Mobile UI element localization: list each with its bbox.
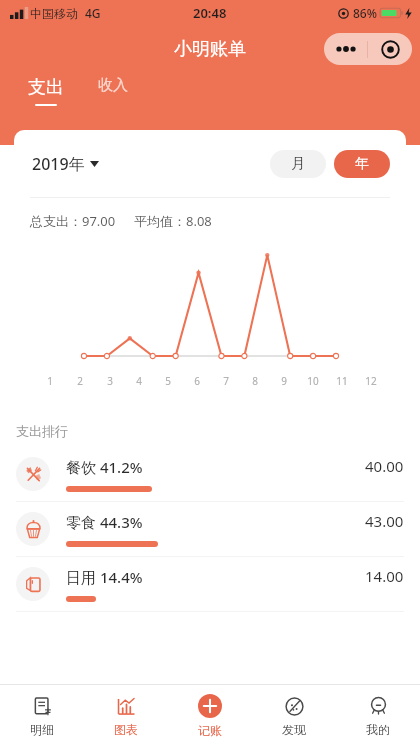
- staticText: 中国移动: [30, 6, 78, 21]
- staticText: 10: [307, 374, 319, 388]
- button[interactable]: 零食 44.3%: [0, 502, 420, 557]
- staticText: 年: [355, 155, 369, 173]
- staticText: 1: [47, 374, 53, 388]
- staticText: 餐饮 41.2%: [66, 457, 143, 477]
- staticText: 2: [77, 374, 83, 388]
- button[interactable]: 月: [270, 150, 326, 178]
- staticText: 明细: [30, 722, 54, 737]
- staticText: 日用 14.4%: [66, 567, 143, 587]
- staticText: 40.00: [365, 456, 404, 476]
- staticText: 7: [223, 374, 229, 388]
- staticText: 图表: [114, 722, 138, 737]
- staticText: 6: [194, 374, 200, 388]
- staticText: 5: [165, 374, 171, 388]
- button[interactable]: 支出: [24, 74, 68, 108]
- staticText: 平均值：8.08: [134, 212, 212, 230]
- button[interactable]: 我的: [336, 685, 420, 747]
- staticText: 4G: [85, 5, 101, 21]
- staticText: 收入: [98, 76, 128, 95]
- button[interactable]: 餐饮 41.2%: [0, 447, 420, 502]
- staticText: 小明账单: [174, 38, 246, 61]
- staticText: 9: [281, 374, 287, 388]
- staticText: 86%: [353, 5, 377, 21]
- staticText: 12: [365, 374, 377, 388]
- staticText: 支出: [28, 76, 64, 99]
- button[interactable]: 2019年: [30, 147, 101, 181]
- button[interactable]: 图表: [84, 685, 168, 747]
- staticText: 月: [291, 155, 305, 173]
- staticText: 零食 44.3%: [66, 512, 143, 532]
- staticText: 11: [336, 374, 348, 388]
- button[interactable]: 日用 14.4%: [0, 557, 420, 612]
- staticText: 14.00: [365, 566, 404, 586]
- staticText: 2019年: [32, 153, 85, 175]
- staticText: 总支出：97.00: [30, 212, 116, 230]
- button[interactable]: 记账: [168, 685, 252, 747]
- staticText: 8: [252, 374, 258, 388]
- staticText: 3: [107, 374, 113, 388]
- staticText: 43.00: [365, 511, 404, 531]
- staticText: 发现: [282, 722, 306, 737]
- staticText: 4: [136, 374, 142, 388]
- button[interactable]: 明细: [0, 685, 84, 747]
- button[interactable]: 年: [334, 150, 390, 178]
- staticText: 记账: [198, 723, 222, 738]
- button[interactable]: 收入: [94, 74, 132, 97]
- staticText: 支出排行: [16, 423, 68, 439]
- staticText: 20:48: [193, 4, 227, 22]
- button[interactable]: More options and close: [324, 33, 412, 65]
- button[interactable]: 发现: [252, 685, 336, 747]
- staticText: 我的: [366, 722, 390, 737]
